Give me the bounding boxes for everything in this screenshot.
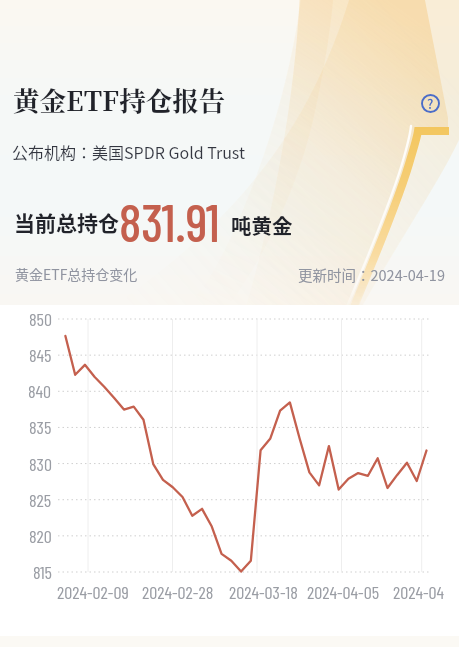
- staticText: 850: [29, 308, 52, 330]
- staticText: 840: [28, 380, 52, 402]
- button[interactable]: Help: [418, 91, 442, 115]
- staticText: 835: [29, 416, 52, 438]
- staticText: 831.91: [119, 190, 220, 252]
- staticText: 当前总持仓: [14, 207, 119, 237]
- staticText: 2024-03-18: [229, 581, 298, 603]
- staticText: 2024-04-05: [307, 581, 380, 603]
- staticText: 更新时间：2024-04-19: [298, 264, 445, 285]
- staticText: 黄金ETF持仓报告: [13, 80, 226, 118]
- staticText: 820: [29, 525, 52, 547]
- staticText: 845: [29, 344, 52, 366]
- staticText: 825: [29, 489, 52, 511]
- staticText: 830: [29, 453, 52, 475]
- staticText: 2024-04: [393, 581, 445, 603]
- staticText: 吨黄金: [231, 210, 293, 240]
- staticText: 黄金ETF总持仓变化: [15, 264, 138, 284]
- staticText: 公布机构：美国SPDR Gold Trust: [12, 140, 246, 163]
- staticText: ?: [427, 94, 434, 113]
- staticText: 2024-02-09: [57, 581, 129, 603]
- staticText: 2024-02-28: [142, 581, 214, 603]
- staticText: 815: [33, 561, 52, 583]
